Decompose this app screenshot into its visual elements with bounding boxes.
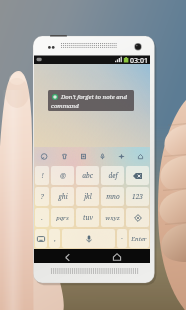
button[interactable]	[62, 229, 115, 248]
staticText: tuv	[83, 213, 93, 222]
button[interactable]: @	[51, 166, 74, 185]
staticText: Don't forget to note and	[61, 93, 127, 101]
staticText: jkl	[84, 192, 92, 201]
staticText: ghi	[58, 192, 68, 201]
button[interactable]	[126, 208, 149, 227]
button[interactable]: jkl	[76, 187, 99, 206]
staticText: ·	[121, 234, 123, 243]
button[interactable]: ?	[35, 187, 49, 206]
staticText: def	[108, 171, 118, 180]
staticText: mno	[106, 192, 120, 201]
staticText: abc	[82, 171, 93, 180]
button[interactable]: mno	[101, 187, 124, 206]
staticText: 03:01	[130, 56, 148, 66]
staticText: @	[60, 171, 66, 180]
staticText: ?	[40, 192, 44, 201]
button[interactable]: Enter	[129, 229, 149, 248]
staticText: command	[51, 102, 79, 110]
button[interactable]	[35, 229, 47, 248]
button[interactable]: abc	[76, 166, 99, 185]
staticText: .	[41, 213, 43, 222]
button[interactable]: Settings	[112, 147, 131, 165]
staticText: wxyz	[105, 214, 120, 222]
button[interactable]: ,	[49, 229, 60, 248]
button[interactable]: Theme	[54, 147, 74, 165]
staticText: ,	[54, 234, 56, 243]
staticText: pqrs	[56, 214, 69, 222]
staticText: Enter	[131, 235, 147, 243]
button[interactable]: tuv	[76, 208, 99, 227]
staticText: 123	[132, 192, 143, 201]
button[interactable]	[126, 166, 149, 185]
button[interactable]: ·	[117, 229, 127, 248]
button[interactable]: Don't forget to note and	[48, 90, 134, 111]
button[interactable]: Home	[131, 147, 150, 165]
button[interactable]: ghi	[51, 187, 74, 206]
button[interactable]: Clipboard	[74, 147, 93, 165]
button[interactable]: !	[35, 166, 49, 185]
button[interactable]: def	[101, 166, 124, 185]
button[interactable]: Voice input	[93, 147, 112, 165]
button[interactable]: wxyz	[101, 208, 124, 227]
button[interactable]: Emoji	[34, 147, 54, 165]
button[interactable]: pqrs	[51, 208, 74, 227]
button[interactable]: 123	[126, 187, 149, 206]
staticText: !	[41, 171, 44, 180]
button[interactable]: .	[35, 208, 49, 227]
